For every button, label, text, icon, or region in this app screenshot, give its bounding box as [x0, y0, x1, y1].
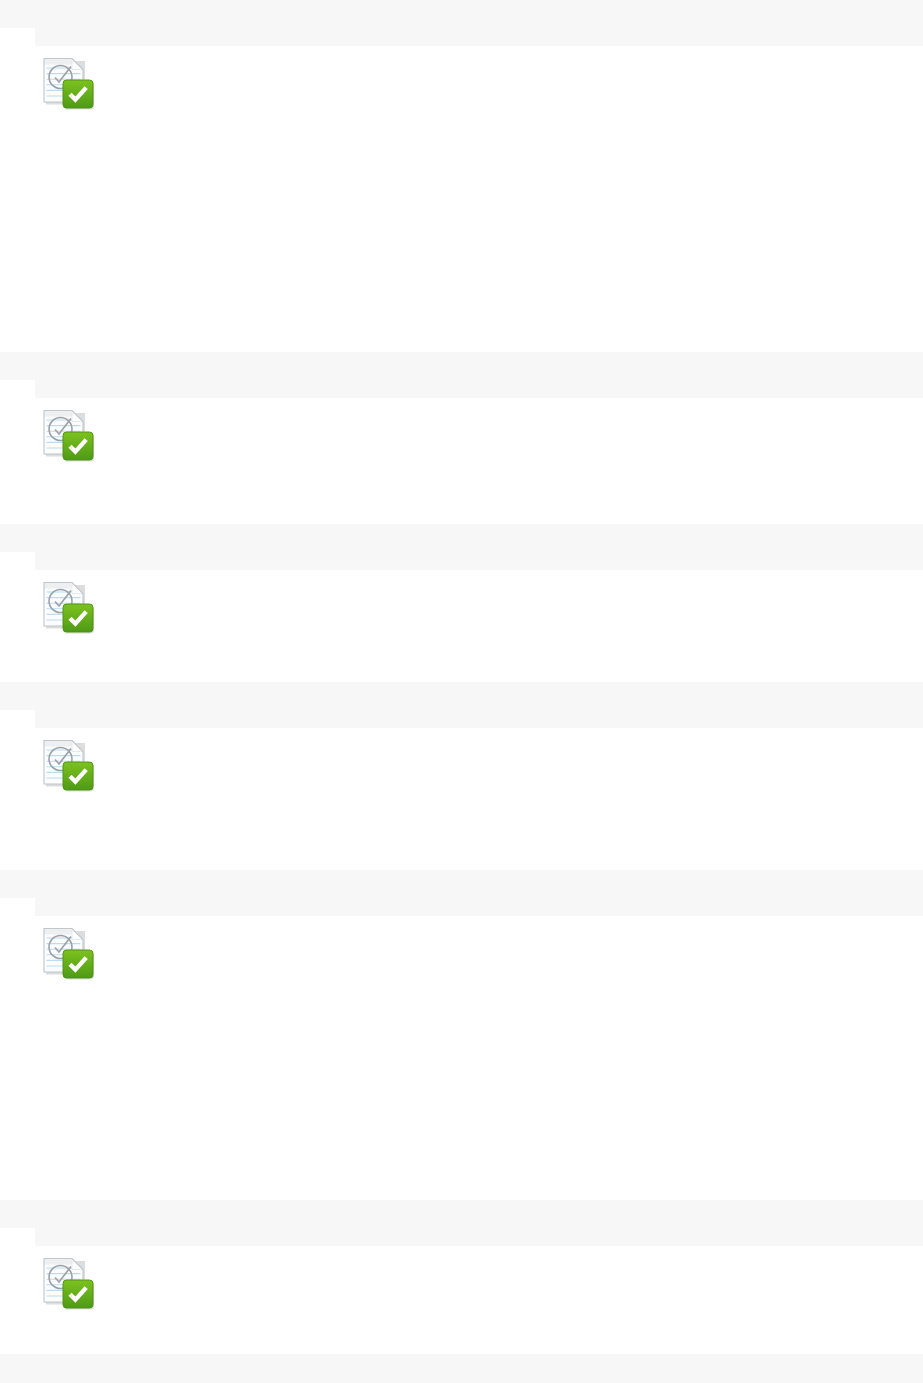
button[interactable]: Completed document: [42, 1256, 96, 1310]
button[interactable]: Completed document: [42, 738, 96, 792]
button[interactable]: Completed document: [42, 408, 96, 462]
button[interactable]: Completed document: [42, 580, 96, 634]
button[interactable]: Completed document: [42, 926, 96, 980]
button[interactable]: Completed document: [42, 56, 96, 110]
